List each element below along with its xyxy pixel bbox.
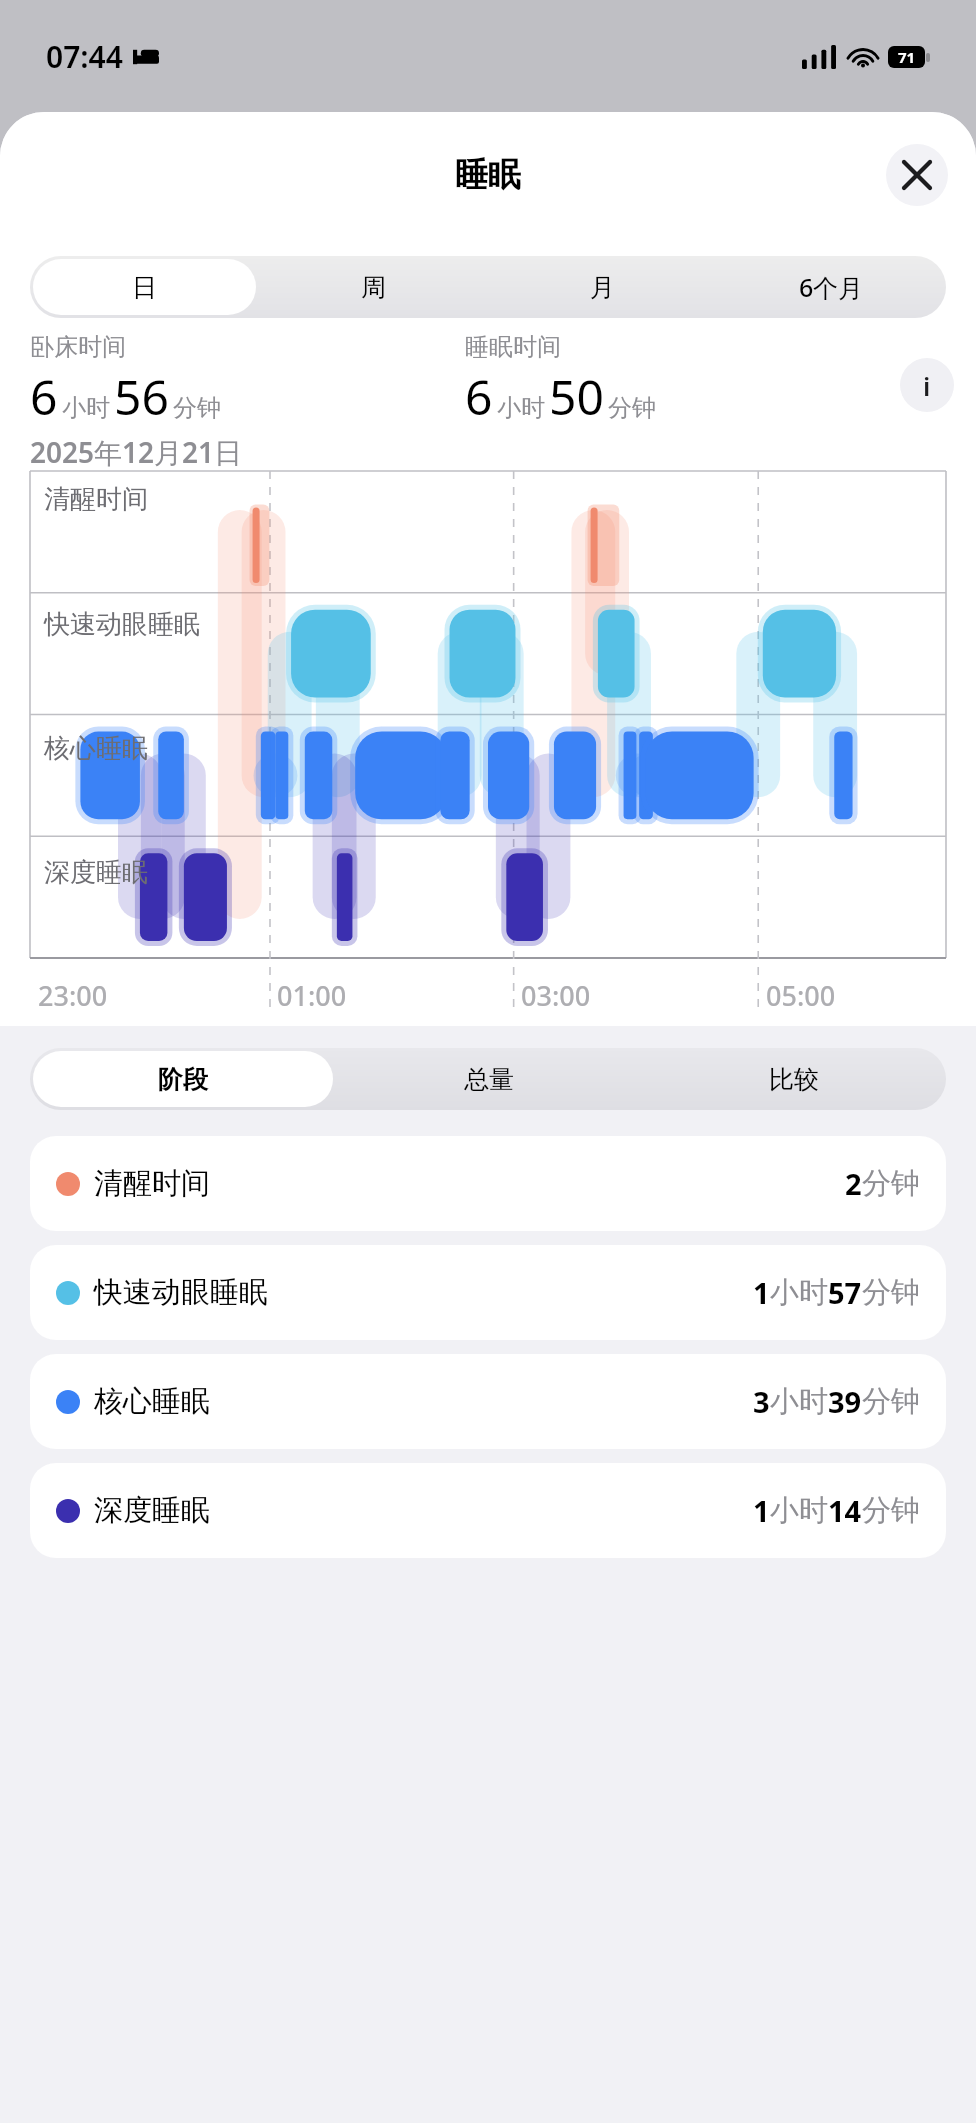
staticText: 比较 (769, 1064, 819, 1095)
staticText: 2025年12月21日 (30, 433, 243, 471)
staticText: 71 (898, 47, 916, 67)
staticText: 日 (132, 272, 157, 303)
button[interactable]: 清醒时间 (30, 1136, 946, 1231)
button[interactable]: 比较 (644, 1051, 943, 1107)
staticText: 分钟 (862, 1492, 920, 1529)
staticText: 07:44 (46, 36, 123, 77)
staticText: i (923, 368, 931, 403)
staticText: 小时 (62, 393, 110, 423)
staticText: 14 (828, 1491, 862, 1530)
staticText: 核心睡眠 (94, 1383, 210, 1420)
staticText: 周 (361, 272, 386, 303)
staticText: 1 (753, 1491, 770, 1530)
button[interactable]: 快速动眼睡眠 (30, 1245, 946, 1340)
staticText: 6 (465, 364, 493, 429)
button[interactable]: 核心睡眠 (30, 1354, 946, 1449)
button[interactable]: 6个月 (720, 259, 943, 315)
button[interactable]: 信息 (900, 358, 954, 412)
staticText: 总量 (464, 1064, 514, 1095)
staticText: 50 (549, 364, 604, 429)
staticText: 分钟 (862, 1274, 920, 1311)
staticText: 39 (828, 1382, 862, 1421)
button[interactable]: 总量 (339, 1051, 638, 1107)
staticText: 56 (114, 364, 169, 429)
button[interactable]: 阶段 (33, 1051, 333, 1107)
button[interactable]: 深度睡眠 (30, 1463, 946, 1558)
staticText: 清醒时间 (94, 1165, 210, 1202)
staticText: 57 (828, 1273, 862, 1312)
staticText: 05:00 (766, 977, 836, 1014)
staticText: 03:00 (521, 977, 591, 1014)
staticText: 快速动眼睡眠 (44, 608, 200, 641)
staticText: 6个月 (799, 270, 864, 304)
staticText: 分钟 (173, 393, 221, 423)
staticText: 分钟 (862, 1383, 920, 1420)
staticText: 深度睡眠 (44, 856, 148, 889)
staticText: 卧床时间 (30, 332, 126, 362)
staticText: 清醒时间 (44, 483, 148, 516)
staticText: 1 (753, 1273, 770, 1312)
staticText: 小时 (770, 1492, 828, 1529)
staticText: 睡眠 (455, 154, 521, 196)
staticText: 快速动眼睡眠 (94, 1274, 268, 1311)
staticText: 6 (30, 364, 58, 429)
staticText: 3 (753, 1382, 770, 1421)
staticText: 小时 (497, 393, 545, 423)
button[interactable]: 月 (491, 259, 714, 315)
staticText: 分钟 (608, 393, 656, 423)
staticText: 01:00 (277, 977, 347, 1014)
staticText: 核心睡眠 (44, 732, 148, 765)
staticText: 月 (590, 272, 615, 303)
button[interactable]: 关闭 (886, 144, 948, 206)
staticText: 睡眠时间 (465, 332, 561, 362)
staticText: 深度睡眠 (94, 1492, 210, 1529)
staticText: 2 (845, 1164, 862, 1203)
staticText: 小时 (770, 1383, 828, 1420)
staticText: 分钟 (862, 1165, 920, 1202)
staticText: 小时 (770, 1274, 828, 1311)
staticText: 阶段 (158, 1064, 208, 1095)
button[interactable]: 周 (262, 259, 485, 315)
button[interactable]: 日 (33, 259, 256, 315)
staticText: 23:00 (38, 977, 108, 1014)
